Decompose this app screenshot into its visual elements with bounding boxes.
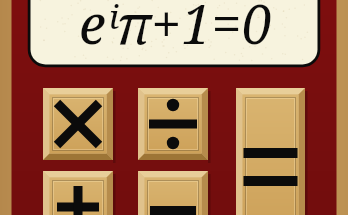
- button[interactable]: Display: [31, 0, 318, 65]
- staticText: eⁱπ+1=0: [79, 0, 272, 60]
- button[interactable]: Divide: [138, 88, 208, 160]
- button[interactable]: Minus: [138, 171, 208, 215]
- button[interactable]: Multiply: [43, 88, 113, 160]
- button[interactable]: Equals: [236, 88, 305, 215]
- button[interactable]: Plus: [43, 171, 113, 215]
